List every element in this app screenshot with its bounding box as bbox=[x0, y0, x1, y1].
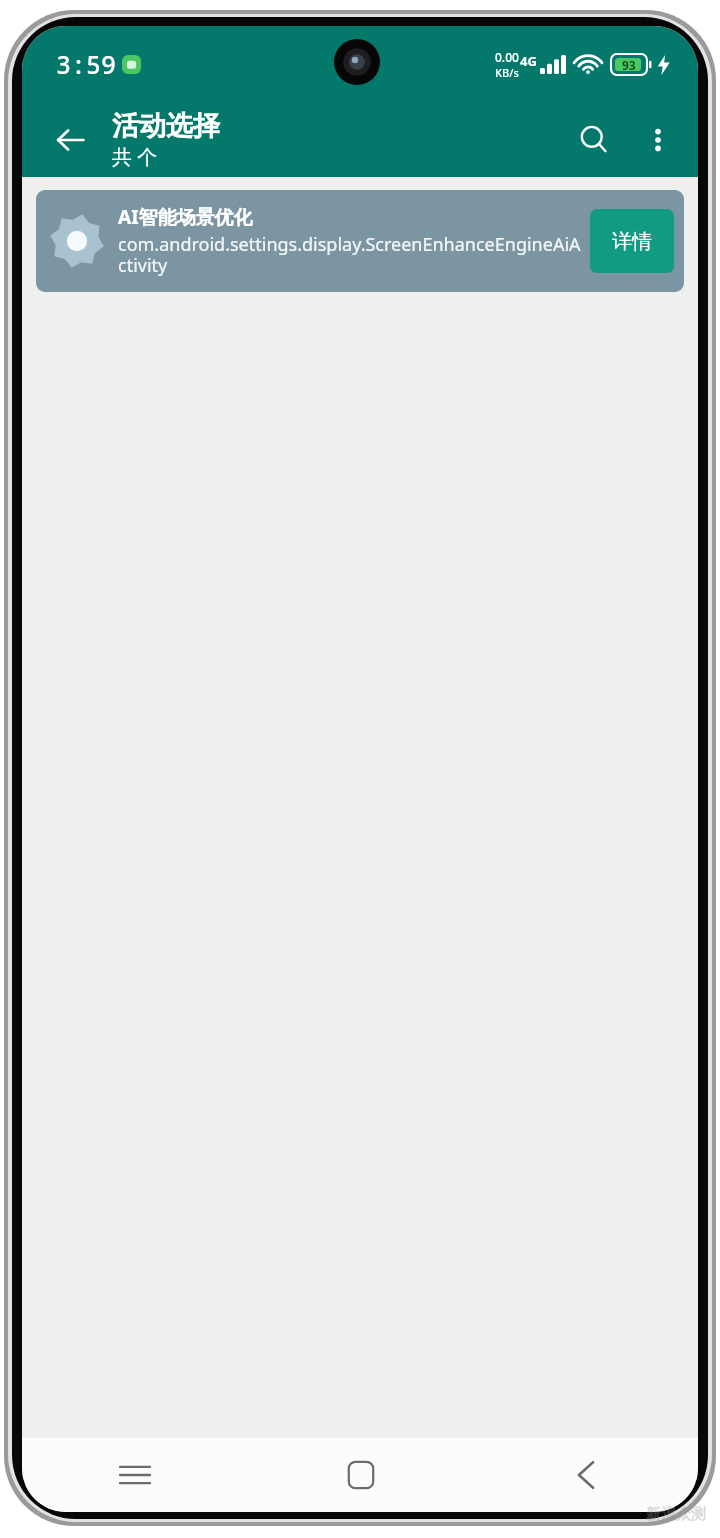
button[interactable]: AI智能场景优化 bbox=[36, 190, 684, 292]
button[interactable]: 返回 bbox=[473, 1438, 698, 1512]
button[interactable]: 搜索 bbox=[566, 112, 622, 168]
staticText: com.android.settings.display.ScreenEnhan… bbox=[118, 232, 582, 278]
staticText: KB/s bbox=[495, 65, 519, 80]
staticText: AI智能场景优化 bbox=[118, 204, 253, 230]
staticText: 93 bbox=[622, 57, 636, 73]
button[interactable]: 详情 bbox=[590, 209, 674, 273]
staticText: 新浪众测 bbox=[646, 1505, 706, 1524]
button[interactable]: 更多选项 bbox=[632, 114, 684, 166]
staticText: 4G bbox=[520, 52, 537, 70]
button[interactable]: 最近任务 bbox=[22, 1438, 248, 1512]
staticText: 共 个 bbox=[112, 143, 158, 170]
staticText: 详情 bbox=[612, 229, 652, 254]
button[interactable]: 主屏幕 bbox=[248, 1438, 473, 1512]
staticText: 0.00 bbox=[495, 49, 519, 65]
staticText: 活动选择 bbox=[112, 109, 220, 143]
staticText: 3:59 bbox=[56, 47, 117, 81]
button[interactable]: 返回 bbox=[44, 114, 96, 166]
